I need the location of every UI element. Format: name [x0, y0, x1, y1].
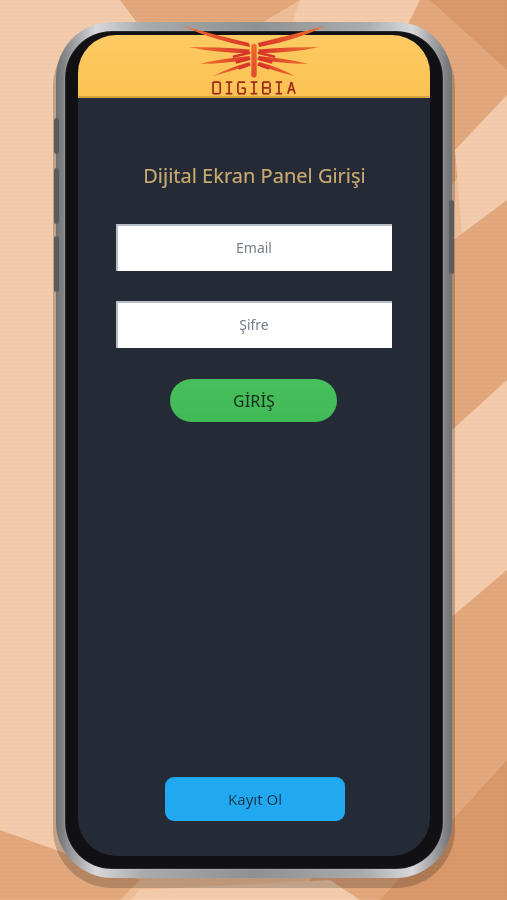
- button[interactable]: GİRİŞ: [170, 379, 337, 422]
- staticText: Email: [236, 238, 272, 257]
- other: Digibia logo: [178, 38, 330, 96]
- staticText: Kayıt Ol: [228, 789, 283, 809]
- staticText: Şifre: [239, 315, 269, 334]
- staticText: Dijital Ekran Panel Girişi: [143, 162, 366, 189]
- button[interactable]: Şifre: [116, 301, 392, 348]
- staticText: GİRİŞ: [233, 390, 275, 412]
- button[interactable]: Email: [116, 224, 392, 271]
- button[interactable]: Kayıt Ol: [165, 777, 345, 821]
